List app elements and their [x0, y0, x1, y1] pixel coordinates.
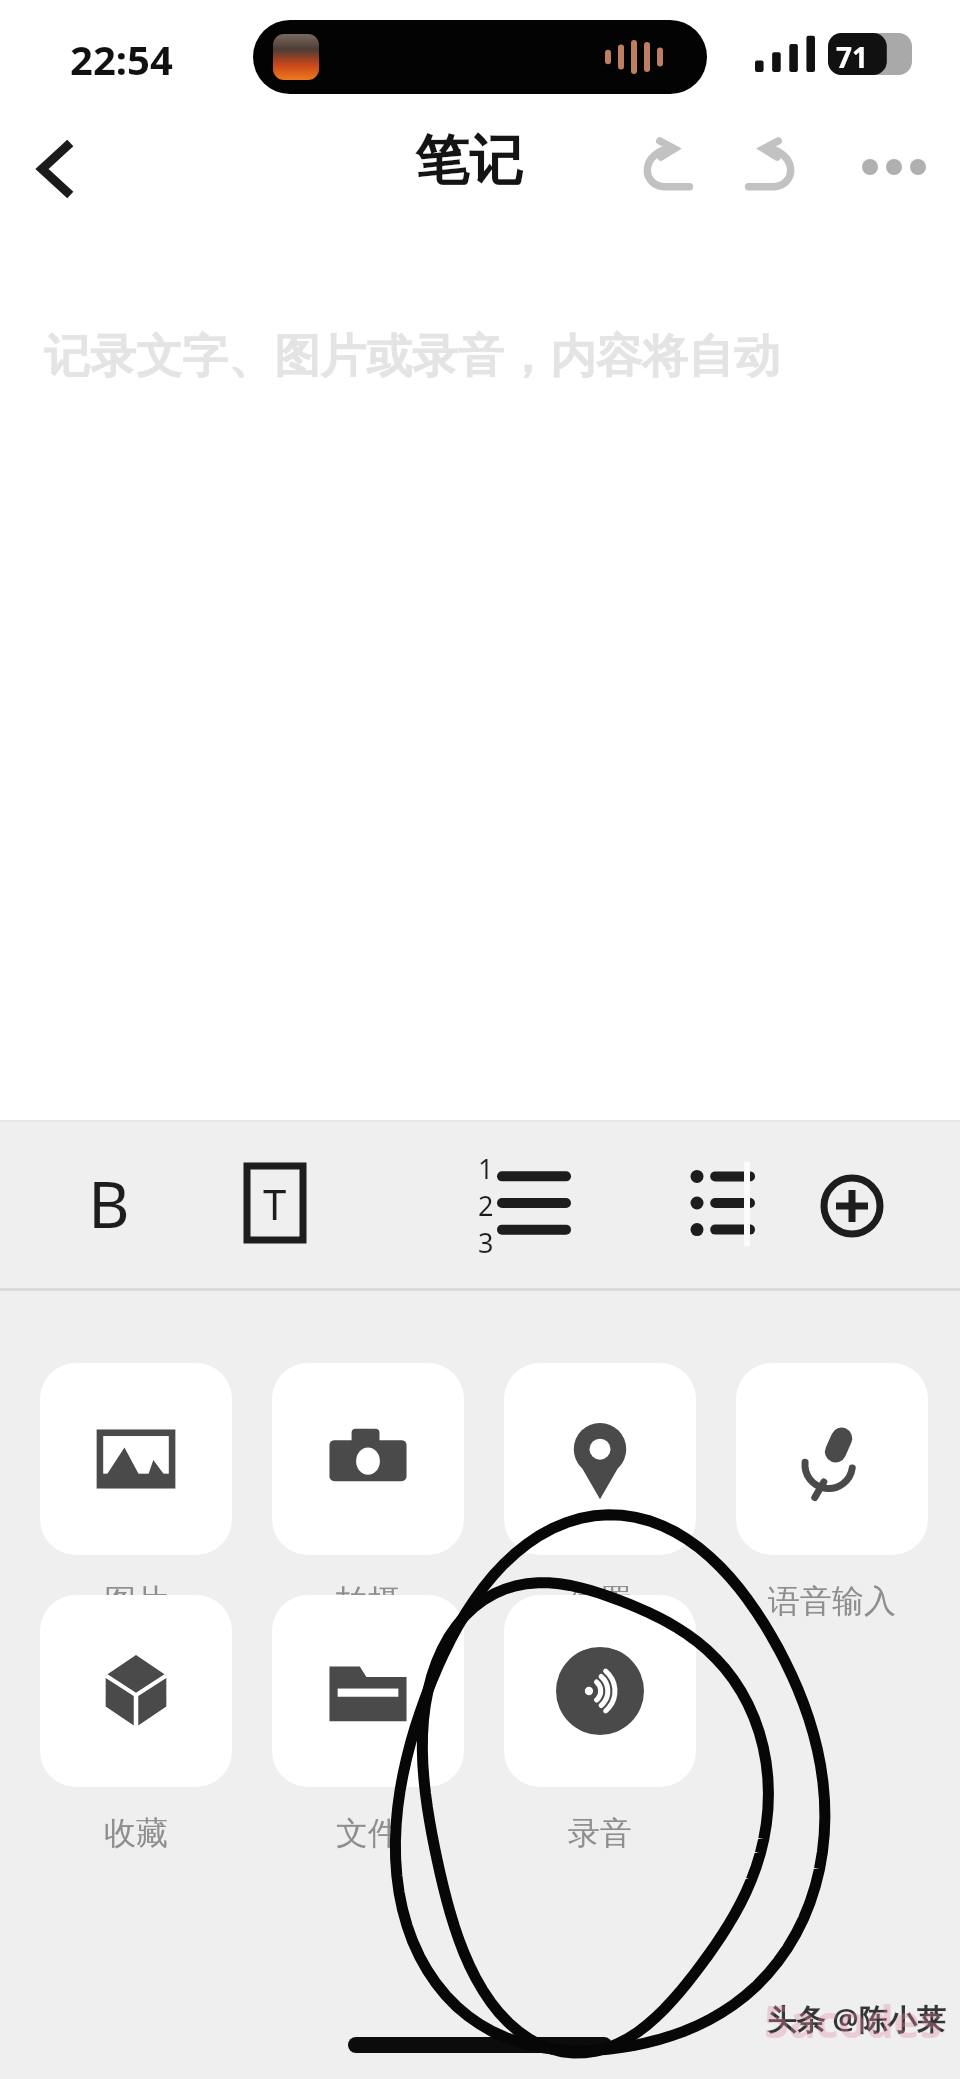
staticText: 5acodes — [764, 1991, 942, 2051]
button[interactable]: 位置 — [504, 1363, 696, 1621]
staticText: 收藏 — [104, 1813, 168, 1853]
button[interactable]: 图片 — [40, 1363, 232, 1621]
button[interactable]: Redo — [730, 123, 818, 211]
button[interactable]: Bold — [56, 1150, 162, 1256]
staticText: 3 — [478, 1224, 494, 1256]
staticText: 1 — [478, 1150, 494, 1187]
button[interactable]: 文件 — [272, 1595, 464, 1853]
staticText: 笔记 — [415, 127, 523, 195]
button[interactable]: More options — [850, 123, 938, 211]
staticText: 拍摄 — [336, 1581, 400, 1621]
button[interactable]: Undo — [620, 123, 708, 211]
staticText: 语音输入 — [768, 1581, 896, 1621]
button[interactable]: 收藏 — [40, 1595, 232, 1853]
button[interactable]: Add attachment — [796, 1150, 908, 1262]
button[interactable]: Text style — [222, 1150, 328, 1256]
staticText: 头条 @陈小莱 — [767, 1999, 946, 2039]
staticText: 位置 — [568, 1581, 632, 1621]
staticText: T — [263, 1175, 287, 1232]
button[interactable]: 语音输入 — [736, 1363, 928, 1621]
button[interactable]: Back — [16, 131, 92, 207]
staticText: 文件 — [336, 1813, 400, 1853]
button[interactable]: Bullet list — [668, 1150, 774, 1256]
staticText: 录音 — [568, 1813, 632, 1853]
staticText: 71 — [836, 38, 869, 76]
staticText: 2 — [478, 1187, 494, 1224]
button[interactable]: 录音 — [504, 1595, 696, 1853]
button[interactable]: 拍摄 — [272, 1363, 464, 1621]
staticText: 图片 — [104, 1581, 168, 1621]
staticText: 22:54 — [70, 32, 173, 86]
button[interactable]: Numbered list — [452, 1150, 592, 1256]
staticText: B — [88, 1160, 130, 1247]
staticText: 记录文字、图片或录音，内容将自动 — [44, 328, 780, 386]
